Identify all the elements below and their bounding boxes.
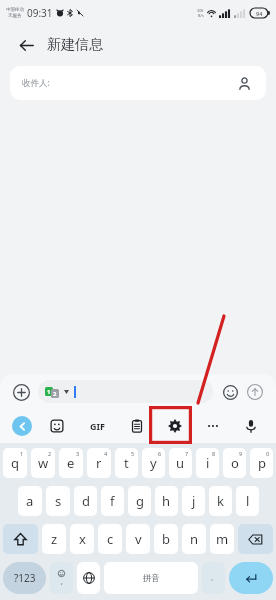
button[interactable]: e bbox=[59, 448, 83, 478]
staticText: z bbox=[51, 530, 58, 548]
button[interactable]: o bbox=[223, 448, 246, 478]
staticText: d bbox=[82, 492, 90, 510]
staticText: q bbox=[11, 454, 19, 472]
button[interactable]: Back bbox=[14, 33, 38, 57]
button[interactable]: 收件人: bbox=[10, 66, 266, 100]
button[interactable]: m bbox=[210, 524, 234, 554]
button[interactable]: l bbox=[236, 486, 259, 516]
staticText: i bbox=[206, 454, 210, 472]
staticText: u bbox=[176, 454, 185, 472]
staticText: 0 bbox=[266, 450, 270, 457]
button[interactable]: Clipboard bbox=[124, 413, 150, 439]
staticText: 。 bbox=[211, 574, 217, 582]
button[interactable]: h bbox=[155, 486, 178, 516]
staticText: r bbox=[96, 454, 102, 472]
staticText: y bbox=[150, 454, 157, 472]
staticText: ?123 bbox=[14, 571, 36, 585]
staticText: g bbox=[136, 492, 144, 510]
button[interactable]: v bbox=[126, 524, 150, 554]
staticText: 7 bbox=[185, 450, 189, 457]
staticText: o bbox=[231, 454, 239, 472]
staticText: 9 bbox=[239, 450, 243, 457]
button[interactable]: w bbox=[31, 448, 55, 478]
button[interactable]: Stickers bbox=[44, 413, 70, 439]
button[interactable]: f bbox=[101, 486, 124, 516]
staticText: 8 bbox=[212, 450, 216, 457]
button[interactable]: 1 bbox=[38, 380, 213, 403]
staticText: n bbox=[190, 530, 199, 548]
button[interactable]: y bbox=[142, 448, 165, 478]
staticText: v bbox=[135, 530, 142, 548]
staticText: 2 bbox=[48, 450, 52, 457]
staticText: b bbox=[162, 530, 170, 548]
staticText: w bbox=[38, 454, 49, 472]
button[interactable]: x bbox=[70, 524, 94, 554]
button[interactable]: Enter bbox=[229, 562, 273, 594]
button[interactable]: Emoji bbox=[219, 381, 241, 403]
staticText: 3 bbox=[76, 450, 80, 457]
staticText: 收件人: bbox=[22, 77, 50, 89]
staticText: , bbox=[61, 577, 63, 587]
staticText: c bbox=[107, 530, 114, 548]
staticText: p bbox=[258, 454, 266, 472]
staticText: 09:31 bbox=[27, 6, 53, 20]
button[interactable]: Settings bbox=[162, 413, 188, 439]
button[interactable]: u bbox=[169, 448, 192, 478]
button[interactable]: a bbox=[18, 486, 42, 516]
staticText: s bbox=[55, 492, 62, 510]
staticText: j bbox=[192, 492, 196, 510]
staticText: l bbox=[246, 492, 250, 510]
button[interactable]: k bbox=[209, 486, 232, 516]
button[interactable]: r bbox=[87, 448, 111, 478]
staticText: m bbox=[216, 530, 229, 548]
staticText: GIF bbox=[90, 420, 105, 432]
button[interactable]: 拼音 bbox=[104, 562, 198, 594]
staticText: 306 bbox=[197, 8, 204, 13]
button[interactable]: Change language bbox=[77, 562, 100, 594]
staticText: t bbox=[124, 454, 129, 472]
button[interactable]: ?123 bbox=[3, 562, 46, 594]
staticText: 5 bbox=[131, 450, 135, 457]
button[interactable]: Emoji and comma bbox=[50, 562, 73, 594]
staticText: 6 bbox=[158, 450, 162, 457]
button[interactable]: j bbox=[182, 486, 205, 516]
staticText: 1 bbox=[20, 450, 24, 457]
button[interactable]: Backspace bbox=[238, 524, 273, 554]
button[interactable]: Voice input bbox=[238, 413, 264, 439]
button[interactable]: Add attachment bbox=[10, 381, 32, 403]
button[interactable]: Collapse toolbar bbox=[12, 416, 32, 436]
button[interactable]: s bbox=[46, 486, 70, 516]
button[interactable]: t bbox=[115, 448, 138, 478]
button[interactable]: q bbox=[3, 448, 27, 478]
staticText: a bbox=[26, 492, 34, 510]
staticText: B/s bbox=[198, 13, 204, 18]
staticText: 1 bbox=[47, 388, 51, 396]
button[interactable]: More options bbox=[200, 413, 226, 439]
button[interactable]: d bbox=[74, 486, 97, 516]
staticText: 94 bbox=[256, 10, 263, 17]
button[interactable]: g bbox=[128, 486, 151, 516]
button[interactable]: Send bbox=[244, 381, 266, 403]
button[interactable]: i bbox=[196, 448, 219, 478]
staticText: h bbox=[162, 492, 171, 510]
button[interactable]: c bbox=[98, 524, 122, 554]
staticText: k bbox=[217, 492, 224, 510]
staticText: e bbox=[67, 454, 75, 472]
staticText: f bbox=[110, 492, 115, 510]
staticText: 无服务 bbox=[8, 13, 22, 19]
button[interactable]: p bbox=[250, 448, 273, 478]
button[interactable]: n bbox=[182, 524, 206, 554]
staticText: 拼音 bbox=[143, 573, 160, 584]
button[interactable]: Shift bbox=[3, 524, 38, 554]
staticText: x bbox=[79, 530, 86, 548]
button[interactable]: GIF bbox=[82, 413, 112, 439]
button[interactable]: b bbox=[154, 524, 178, 554]
button[interactable]: z bbox=[42, 524, 66, 554]
staticText: 新建信息 bbox=[47, 36, 103, 54]
staticText: 2 bbox=[53, 390, 57, 398]
button[interactable]: Pick contact bbox=[234, 73, 254, 93]
staticText: 4 bbox=[104, 450, 108, 457]
staticText: 中国移动 bbox=[6, 7, 24, 13]
